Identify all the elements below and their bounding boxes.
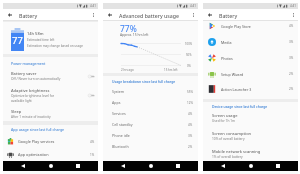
button[interactable]: Recents — [71, 161, 85, 171]
button[interactable]: Battery saver — [3, 71, 98, 81]
staticText: Approx. 15 hrs left — [120, 32, 149, 36]
staticText: 3% — [289, 40, 294, 44]
staticText: 3% — [188, 134, 193, 138]
button[interactable]: Recents — [171, 161, 185, 171]
button[interactable]: Bluetooth — [103, 141, 198, 152]
staticText: 100% — [185, 42, 193, 46]
staticText: 4% — [188, 123, 193, 127]
staticText: 4:41 — [90, 4, 96, 8]
button[interactable]: Google Play Store — [203, 18, 298, 34]
staticText: 4% — [90, 140, 95, 144]
staticText: Usage breakdown since last full charge — [112, 79, 176, 84]
staticText: 77% — [120, 23, 137, 35]
staticText: Photos — [221, 56, 289, 61]
staticText: 2% — [188, 145, 193, 149]
staticText: 10% of overall battery — [212, 137, 245, 141]
button[interactable]: Home — [44, 161, 58, 171]
staticText: Used for 1h 1m — [212, 119, 236, 123]
staticText: 4% — [289, 24, 294, 28]
staticText: Screen usage — [212, 113, 238, 118]
button[interactable]: Google Play services — [3, 135, 98, 148]
staticText: 15 hrs left — [164, 68, 178, 72]
button[interactable]: Media — [203, 34, 298, 50]
staticText: 77 — [12, 34, 23, 47]
button[interactable]: Mobile network scanning — [203, 149, 298, 159]
staticText: Google Play Store — [221, 24, 289, 29]
staticText: Estimation may change based on usage — [27, 44, 83, 48]
staticText: Mobile network scanning — [212, 149, 261, 154]
staticText: Google Play services — [18, 139, 90, 144]
staticText: Battery — [219, 12, 238, 19]
button[interactable]: Back — [116, 161, 130, 171]
staticText: 4% — [188, 112, 193, 116]
button[interactable]: Action Launcher 3 — [203, 82, 298, 96]
staticText: 2% — [289, 87, 294, 91]
staticText: App optimization — [18, 152, 90, 157]
button[interactable]: Screen consumption — [203, 131, 298, 141]
staticText: App usage since last full charge — [11, 127, 65, 132]
staticText: Device usage since last full charge — [212, 104, 268, 109]
button[interactable]: Services — [103, 108, 198, 119]
staticText: 14h 58m — [27, 31, 44, 36]
staticText: Phone idle — [112, 133, 188, 138]
button[interactable]: More options — [288, 9, 298, 21]
staticText: Power management — [11, 61, 46, 66]
staticText: System — [112, 89, 187, 94]
staticText: 4:41 — [190, 4, 196, 8]
button[interactable]: More options — [88, 9, 98, 21]
staticText: Battery saver — [11, 71, 37, 76]
button[interactable]: More options — [188, 9, 198, 21]
staticText: Adaptive brightness — [11, 88, 50, 93]
staticText: After 1 minute of inactivity — [11, 115, 51, 119]
staticText: Bluetooth — [112, 144, 188, 149]
staticText: Optimize brightness level for available … — [11, 94, 55, 103]
button[interactable]: Setup Wizard — [203, 66, 298, 82]
staticText: Action Launcher 3 — [221, 87, 289, 92]
staticText: 12% — [187, 101, 193, 105]
button[interactable]: Back — [103, 9, 116, 21]
staticText: 4:41 — [290, 4, 296, 8]
staticText: Sleep — [11, 109, 22, 114]
button[interactable]: Photos — [203, 50, 298, 66]
button[interactable]: Apps — [103, 97, 198, 108]
staticText: Services — [112, 111, 188, 116]
staticText: 1% of overall battery — [212, 155, 243, 159]
staticText: Media — [221, 40, 289, 45]
button[interactable]: Adaptive brightness — [3, 88, 98, 103]
staticText: 50% — [186, 53, 192, 57]
button[interactable]: Cell standby — [103, 119, 198, 130]
button[interactable]: Screen usage — [203, 113, 298, 123]
button[interactable]: Back — [3, 9, 16, 21]
button[interactable]: Back — [16, 161, 30, 171]
button[interactable]: System — [103, 86, 198, 97]
button[interactable]: Home — [244, 161, 258, 171]
staticText: 2% — [289, 72, 294, 76]
staticText: 2 hrs ago — [121, 68, 134, 72]
button[interactable]: Back — [203, 9, 216, 21]
staticText: Estimated time left — [27, 38, 55, 42]
staticText: Apps — [112, 100, 187, 105]
staticText: 55% — [187, 90, 193, 94]
button[interactable]: Phone idle — [103, 130, 198, 141]
button[interactable]: Sleep — [3, 109, 98, 119]
staticText: Advanced battery usage — [119, 12, 180, 19]
staticText: Screen consumption — [212, 131, 252, 136]
staticText: Off / Never turn on automatically — [11, 77, 61, 81]
staticText: 0% — [187, 64, 191, 68]
button[interactable]: App optimization — [3, 148, 98, 161]
staticText: 3% — [289, 56, 294, 60]
staticText: 1% — [90, 153, 95, 157]
button[interactable]: Home — [144, 161, 158, 171]
staticText: Cell standby — [112, 122, 188, 127]
staticText: Setup Wizard — [221, 72, 289, 77]
staticText: Battery — [19, 12, 38, 19]
button[interactable]: Back — [216, 161, 230, 171]
button[interactable]: Recents — [271, 161, 285, 171]
